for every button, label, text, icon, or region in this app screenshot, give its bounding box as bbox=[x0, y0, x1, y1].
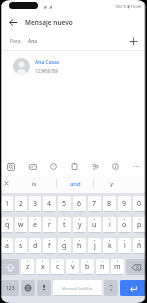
staticText: x bbox=[41, 262, 45, 272]
button[interactable]: Ana Casas bbox=[13, 51, 147, 82]
staticText: e bbox=[33, 220, 37, 230]
button[interactable] bbox=[126, 259, 146, 275]
button[interactable]: u bbox=[88, 217, 101, 233]
staticText: p bbox=[137, 220, 142, 230]
button[interactable]: 3 bbox=[29, 196, 41, 212]
button[interactable]: w bbox=[15, 217, 27, 233]
staticText: Para bbox=[10, 38, 21, 45]
staticText: Ana Casas bbox=[35, 59, 60, 66]
button[interactable]: i bbox=[103, 217, 116, 233]
button[interactable] bbox=[104, 280, 118, 296]
button[interactable]: and bbox=[57, 174, 93, 193]
staticText: c bbox=[56, 262, 60, 272]
staticText: w bbox=[18, 220, 24, 230]
button[interactable]: 6 bbox=[73, 196, 86, 212]
staticText: q bbox=[5, 220, 10, 230]
button[interactable]: Para bbox=[0, 32, 147, 51]
button[interactable]: f bbox=[43, 238, 56, 254]
staticText: is bbox=[32, 180, 37, 188]
staticText: 5 bbox=[62, 199, 67, 209]
button[interactable]: d bbox=[29, 238, 41, 254]
staticText: 0 bbox=[137, 199, 142, 209]
button[interactable] bbox=[9, 18, 18, 27]
staticText: Microsoft SwiftKey bbox=[62, 286, 93, 291]
button[interactable]: 0 bbox=[133, 196, 146, 212]
button[interactable]: j bbox=[88, 238, 101, 254]
button[interactable]: t bbox=[58, 217, 71, 233]
button[interactable] bbox=[29, 163, 37, 171]
staticText: b bbox=[85, 262, 90, 272]
button[interactable]: s bbox=[15, 238, 27, 254]
staticText: r bbox=[48, 220, 51, 230]
staticText: n bbox=[100, 262, 105, 272]
staticText: a bbox=[5, 241, 9, 251]
staticText: 8 bbox=[107, 199, 112, 209]
button[interactable]: b bbox=[81, 259, 94, 275]
button[interactable]: Microsoft SwiftKey bbox=[53, 280, 102, 296]
button[interactable]: y bbox=[94, 174, 129, 193]
button[interactable] bbox=[0, 177, 13, 190]
button[interactable]: 5 bbox=[58, 196, 71, 212]
button[interactable]: a bbox=[1, 238, 13, 254]
staticText: i bbox=[109, 220, 111, 230]
button[interactable] bbox=[21, 280, 35, 296]
staticText: g bbox=[62, 241, 67, 251]
button[interactable] bbox=[129, 37, 138, 46]
button[interactable]: v bbox=[66, 259, 79, 275]
button[interactable]: e bbox=[29, 217, 41, 233]
button[interactable]: 1 bbox=[1, 196, 13, 212]
staticText: f bbox=[48, 241, 51, 251]
button[interactable] bbox=[37, 280, 51, 296]
button[interactable]: q bbox=[1, 217, 13, 233]
staticText: t bbox=[63, 220, 66, 230]
staticText: 123456789 bbox=[35, 68, 59, 74]
button[interactable]: 8 bbox=[103, 196, 116, 212]
button[interactable]: r bbox=[43, 217, 56, 233]
button[interactable]: m bbox=[111, 259, 124, 275]
button[interactable]: c bbox=[51, 259, 64, 275]
button[interactable]: o bbox=[118, 217, 131, 233]
button[interactable]: z bbox=[21, 259, 34, 275]
staticText: Ana bbox=[28, 38, 38, 45]
staticText: 7 bbox=[92, 199, 97, 209]
staticText: s bbox=[19, 241, 23, 251]
staticText: Mensaje nuevo bbox=[25, 18, 73, 27]
button[interactable] bbox=[7, 163, 15, 171]
button[interactable] bbox=[92, 163, 99, 170]
button[interactable]: 123 bbox=[1, 280, 19, 296]
button[interactable]: n bbox=[96, 259, 109, 275]
staticText: u bbox=[92, 220, 97, 230]
button[interactable] bbox=[1, 259, 19, 275]
button[interactable]: l bbox=[118, 238, 131, 254]
button[interactable]: 7 bbox=[88, 196, 101, 212]
button[interactable]: 2 bbox=[15, 196, 27, 212]
staticText: j bbox=[94, 241, 96, 251]
button[interactable] bbox=[112, 163, 119, 170]
staticText: y bbox=[78, 220, 82, 230]
button[interactable]: g bbox=[58, 238, 71, 254]
button[interactable]: y bbox=[73, 217, 86, 233]
staticText: 3 bbox=[33, 199, 38, 209]
staticText: v bbox=[71, 262, 75, 272]
button[interactable]: k bbox=[103, 238, 116, 254]
button[interactable] bbox=[71, 163, 78, 170]
button[interactable]: p bbox=[133, 217, 146, 233]
button[interactable]: is bbox=[13, 174, 56, 193]
button[interactable]: h bbox=[73, 238, 86, 254]
staticText: h bbox=[77, 241, 82, 251]
button[interactable]: 9 bbox=[118, 196, 131, 212]
button[interactable]: x bbox=[36, 259, 49, 275]
button[interactable] bbox=[133, 163, 140, 170]
button[interactable]: ñ bbox=[133, 238, 146, 254]
staticText: and bbox=[70, 180, 81, 188]
staticText: d bbox=[33, 241, 38, 251]
staticText: y bbox=[110, 180, 114, 188]
staticText: 2 bbox=[19, 199, 24, 209]
button[interactable] bbox=[50, 163, 57, 170]
staticText: 9 bbox=[122, 199, 127, 209]
button[interactable]: 4 bbox=[43, 196, 56, 212]
staticText: k bbox=[108, 241, 112, 251]
staticText: 1 bbox=[5, 199, 10, 209]
staticText: m bbox=[114, 262, 121, 272]
button[interactable] bbox=[120, 280, 146, 296]
